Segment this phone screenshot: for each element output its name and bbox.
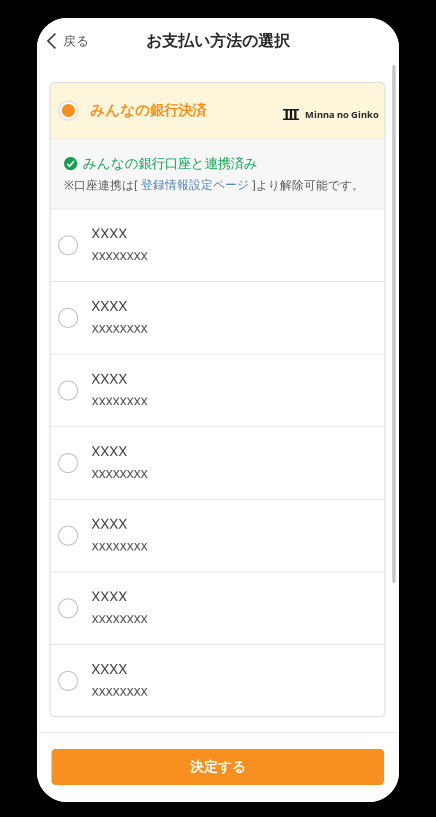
staticText: お支払い方法の選択 — [146, 31, 290, 51]
button[interactable]: XXXX — [50, 427, 385, 499]
staticText: 戻る — [63, 33, 89, 49]
staticText: xxxxxxxx — [92, 463, 148, 482]
button[interactable]: XXXX — [50, 572, 385, 644]
staticText: 登録情報設定ページ — [141, 177, 249, 192]
staticText: xxxxxxxx — [92, 245, 148, 264]
button[interactable]: XXXX — [50, 209, 385, 281]
staticText: みんなの銀行口座と連携済み — [83, 155, 258, 172]
staticText: ]より解除可能です。 — [249, 177, 364, 193]
staticText: XXXX — [92, 223, 128, 243]
staticText: xxxxxxxx — [92, 390, 148, 410]
staticText: Minna no Ginko — [305, 108, 379, 121]
staticText: XXXX — [92, 295, 128, 315]
button[interactable]: XXXX — [50, 355, 385, 426]
staticText: XXXX — [92, 513, 128, 533]
staticText: みんなの銀行決済 — [90, 101, 206, 120]
staticText: XXXX — [92, 441, 128, 461]
staticText: XXXX — [92, 658, 128, 678]
staticText: 決定する — [190, 758, 246, 776]
staticText: xxxxxxxx — [92, 318, 148, 337]
button[interactable]: XXXX — [50, 282, 385, 354]
button[interactable]: XXXX — [50, 500, 385, 571]
button[interactable]: 決定する — [51, 749, 384, 785]
button[interactable]: XXXX — [50, 645, 385, 717]
staticText: xxxxxxxx — [92, 536, 148, 555]
staticText: xxxxxxxx — [92, 608, 148, 627]
staticText: XXXX — [92, 586, 128, 606]
staticText: XXXX — [92, 368, 128, 388]
button[interactable]: 戻る — [37, 27, 97, 55]
staticText: xxxxxxxx — [92, 681, 148, 700]
staticText: ※口座連携は[ — [64, 177, 141, 193]
